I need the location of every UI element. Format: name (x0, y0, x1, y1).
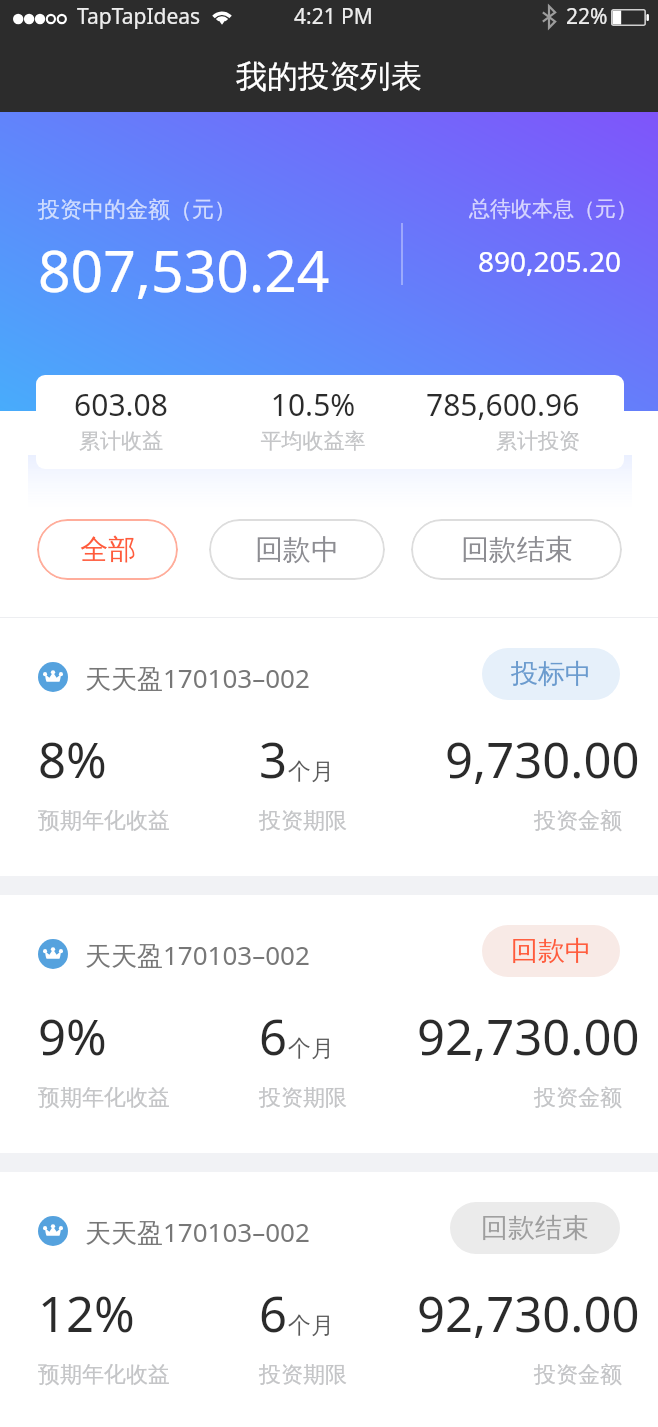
staticText: 6 (259, 1280, 288, 1347)
button[interactable]: 回款结束 (450, 1202, 620, 1254)
button[interactable]: 回款中 (482, 925, 620, 977)
staticText: TapTapIdeas (77, 2, 201, 31)
button[interactable]: 投标中 (482, 648, 620, 700)
staticText: 回款结束 (481, 1211, 589, 1245)
staticText: 22% (566, 2, 608, 31)
staticText: 个月 (288, 757, 334, 786)
staticText: 预期年化收益 (38, 1361, 170, 1389)
button[interactable]: 全部 (37, 519, 178, 580)
button[interactable]: 天天盈170103–002 (0, 618, 658, 876)
staticText: 平均收益率 (219, 428, 407, 454)
staticText: 全部 (80, 532, 136, 567)
staticText: 投资中的金额（元） (38, 196, 236, 224)
staticText: 投资金额 (534, 807, 622, 835)
staticText: 9% (38, 1003, 107, 1070)
staticText: 累计收益 (36, 428, 215, 454)
staticText: 4:21 PM (294, 2, 373, 31)
button[interactable]: 天天盈170103–002 (0, 1172, 658, 1427)
button[interactable]: 回款结束 (411, 519, 622, 580)
staticText: 预期年化收益 (38, 807, 170, 835)
staticText: 累计投资 (496, 428, 580, 454)
staticText: 9,730.00 (445, 726, 640, 793)
staticText: 92,730.00 (417, 1280, 640, 1347)
staticText: 天天盈170103–002 (85, 937, 310, 973)
staticText: 回款中 (511, 934, 592, 968)
staticText: 回款中 (255, 532, 339, 567)
staticText: 3 (259, 726, 288, 793)
button[interactable]: 回款中 (209, 519, 385, 580)
staticText: 投资期限 (259, 1084, 347, 1112)
staticText: 预期年化收益 (38, 1084, 170, 1112)
staticText: 个月 (288, 1311, 334, 1340)
staticText: 603.08 (36, 384, 215, 425)
staticText: 投资金额 (534, 1361, 622, 1389)
staticText: 回款结束 (461, 532, 573, 567)
staticText: 890,205.20 (478, 242, 622, 280)
staticText: 投资金额 (534, 1084, 622, 1112)
staticText: 6 (259, 1003, 288, 1070)
staticText: 10.5% (219, 384, 407, 425)
button[interactable]: 天天盈170103–002 (0, 895, 658, 1153)
staticText: 785,600.96 (426, 384, 580, 425)
staticText: 投资期限 (259, 1361, 347, 1389)
staticText: 天天盈170103–002 (85, 1214, 310, 1250)
staticText: 个月 (288, 1034, 334, 1063)
staticText: 天天盈170103–002 (85, 660, 310, 696)
staticText: 总待收本息（元） (469, 196, 633, 222)
staticText: 92,730.00 (417, 1003, 640, 1070)
staticText: 807,530.24 (38, 231, 330, 309)
staticText: 12% (38, 1280, 135, 1347)
staticText: 我的投资列表 (236, 57, 422, 96)
staticText: 8% (38, 726, 107, 793)
staticText: 投标中 (511, 657, 592, 691)
staticText: 投资期限 (259, 807, 347, 835)
